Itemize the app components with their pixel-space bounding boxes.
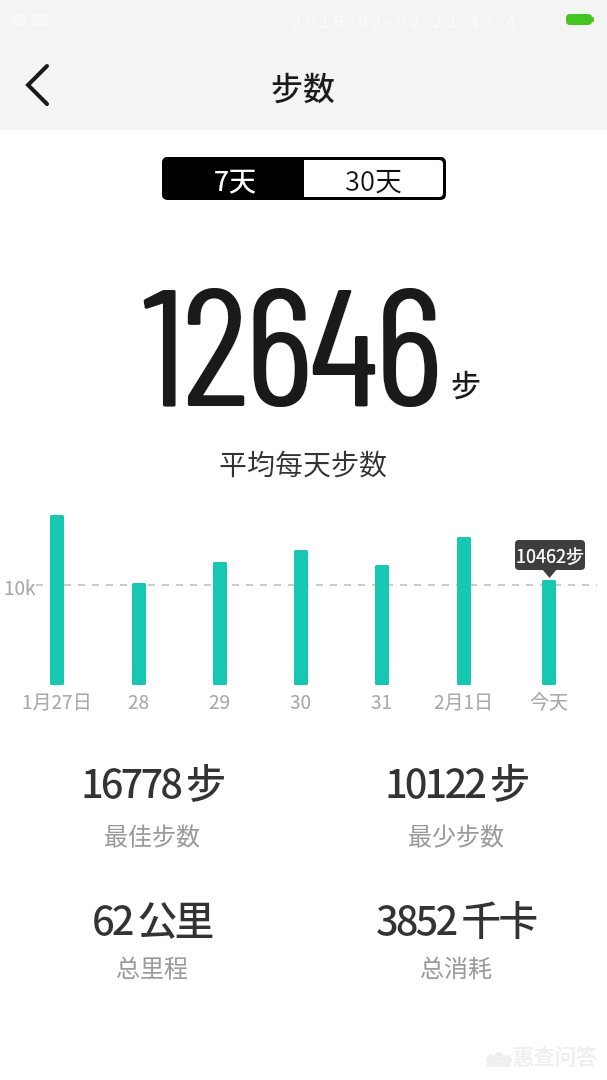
- staticText: 最佳步数: [104, 817, 200, 852]
- staticText: 10462步: [516, 542, 584, 568]
- staticText: 10122 步: [385, 752, 527, 810]
- staticText: 30天: [345, 160, 402, 197]
- staticText: 步数: [271, 63, 336, 109]
- staticText: 28: [128, 687, 150, 711]
- staticText: 最少步数: [408, 817, 504, 852]
- staticText: 步: [451, 361, 481, 404]
- staticText: 29: [209, 687, 231, 711]
- staticText: 3852 千卡: [376, 889, 536, 947]
- staticText: 总消耗: [420, 949, 492, 984]
- button[interactable]: [12, 55, 72, 115]
- staticText: 7天: [214, 160, 256, 197]
- staticText: 惠查问答: [513, 1040, 597, 1070]
- staticText: 2月1日: [434, 687, 494, 711]
- staticText: 10k: [4, 573, 36, 597]
- staticText: 12646: [142, 240, 439, 439]
- button[interactable]: 7天: [165, 160, 304, 197]
- staticText: 总里程: [116, 949, 188, 984]
- staticText: 平均每天步数: [219, 443, 388, 483]
- staticText: 62 公里: [92, 889, 212, 947]
- staticText: 12646: [143, 240, 440, 439]
- staticText: 今天: [530, 687, 569, 711]
- button[interactable]: 30天: [304, 160, 443, 197]
- staticText: 30: [290, 687, 312, 711]
- staticText: 1月27日: [22, 687, 92, 711]
- staticText: 31: [371, 687, 393, 711]
- staticText: 16778 步: [81, 752, 223, 810]
